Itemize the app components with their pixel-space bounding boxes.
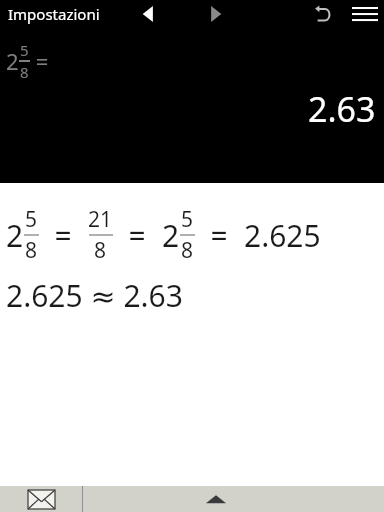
staticText: 5 [20,40,29,60]
staticText: 8 [94,236,107,265]
button[interactable]: Mail [0,486,82,512]
staticText: 8 [25,236,38,265]
staticText: 5 [25,205,38,234]
button[interactable]: Menu [346,0,384,28]
staticText: 5 [181,205,194,234]
button[interactable]: Impostazioni [0,2,108,26]
button[interactable]: Undo [306,0,340,28]
staticText: 8 [20,62,29,82]
staticText: 2.625 ≈ 2.63 [6,275,183,316]
staticText: = [113,215,162,256]
staticText: 2 [162,215,180,256]
button[interactable]: Expand [83,486,384,512]
staticText: 21 [88,205,113,234]
staticText: 2.63 [308,86,376,132]
staticText: = [30,46,49,76]
staticText: 2.625 [244,215,321,256]
staticText: = [195,215,244,256]
staticText: 2 [6,46,19,76]
staticText: 2 [6,215,24,256]
staticText: = [39,215,88,256]
button[interactable]: Next [200,0,232,28]
staticText: 8 [181,236,194,265]
button[interactable]: Previous [132,0,164,28]
